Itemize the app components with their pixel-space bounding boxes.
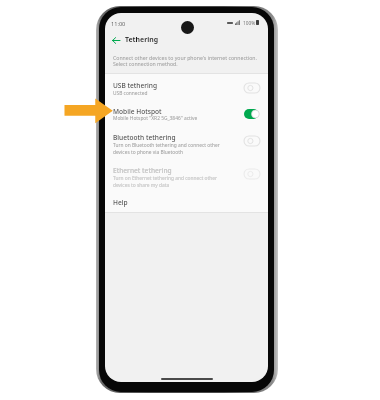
staticText: Mobile Hotspot — [113, 107, 162, 116]
button[interactable]: Toggle — [244, 136, 260, 146]
button[interactable]: USB tethering — [105, 74, 268, 99]
button[interactable]: Toggle — [244, 83, 260, 93]
button[interactable]: Ethernet tethering — [105, 159, 268, 190]
button[interactable]: Help — [105, 192, 268, 211]
staticText: 100% — [243, 20, 256, 27]
button[interactable]: Back — [109, 33, 123, 47]
other: Pointer arrow — [64, 98, 113, 124]
staticText: Turn on Ethernet tethering and connect o… — [113, 175, 217, 188]
button[interactable]: Bluetooth tethering — [105, 126, 268, 157]
staticText: USB connected — [113, 90, 148, 97]
staticText: 11:00 — [111, 20, 126, 28]
button[interactable]: Toggle — [244, 169, 260, 179]
button[interactable]: Toggle — [244, 109, 260, 119]
staticText: Help — [113, 198, 128, 207]
staticText: Connect other devices to your phone's in… — [113, 54, 257, 67]
staticText: Tethering — [125, 35, 159, 44]
staticText: USB tethering — [113, 81, 158, 90]
staticText: Bluetooth tethering — [113, 133, 176, 142]
staticText: Mobile Hotspot "XR2 5G_3846" active — [113, 115, 198, 122]
button[interactable]: Mobile Hotspot — [105, 100, 268, 125]
staticText: Ethernet tethering — [113, 166, 172, 175]
staticText: Turn on Bluetooth tethering and connect … — [113, 142, 220, 155]
